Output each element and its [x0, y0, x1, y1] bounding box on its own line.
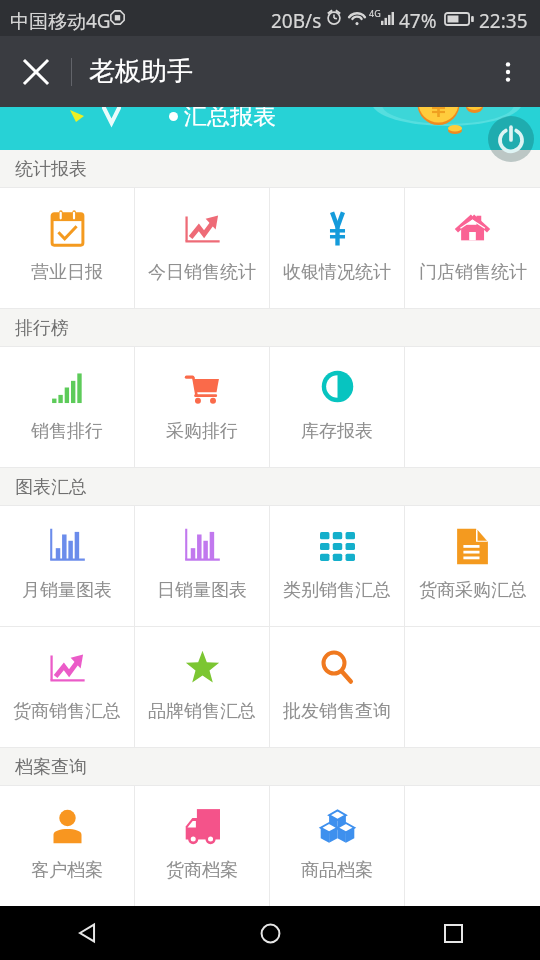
button[interactable]: 采购排行 — [135, 347, 269, 467]
staticText: 47% — [399, 8, 437, 34]
button[interactable]: 库存报表 — [270, 347, 404, 467]
staticText: 货商销售汇总 — [13, 700, 121, 723]
staticText: 中国移动4G — [10, 8, 111, 34]
staticText: 营业日报 — [31, 261, 103, 284]
staticText: 日销量图表 — [157, 579, 247, 602]
staticText: 今日销售统计 — [148, 261, 256, 284]
button[interactable]: 今日销售统计 — [135, 188, 269, 308]
staticText: 统计报表 — [15, 158, 87, 181]
button[interactable]: Home — [243, 906, 297, 960]
button[interactable]: 收银情况统计 — [270, 188, 404, 308]
staticText: 品牌销售汇总 — [148, 700, 256, 723]
staticText: 老板助手 — [89, 55, 193, 88]
staticText: 图表汇总 — [15, 476, 87, 499]
staticText: 22:35 — [479, 8, 528, 34]
button[interactable]: Power — [488, 116, 534, 162]
staticText: 批发销售查询 — [283, 700, 391, 723]
staticText: 销售排行 — [31, 420, 103, 443]
staticText: 4G — [369, 7, 381, 19]
staticText: 客户档案 — [31, 859, 103, 882]
button[interactable]: 货商采购汇总 — [405, 506, 540, 626]
staticText: 20B/s — [271, 8, 322, 34]
staticText: 排行榜 — [15, 317, 69, 340]
staticText: 收银情况统计 — [283, 261, 391, 284]
button[interactable]: 月销量图表 — [0, 506, 134, 626]
staticText: 门店销售统计 — [419, 261, 527, 284]
button[interactable]: 类别销售汇总 — [270, 506, 404, 626]
staticText: 类别销售汇总 — [283, 579, 391, 602]
button[interactable]: Close — [0, 36, 71, 107]
staticText: 档案查询 — [15, 756, 87, 779]
button[interactable]: 客户档案 — [0, 786, 134, 906]
button[interactable]: 货商销售汇总 — [0, 627, 134, 747]
staticText: 货商档案 — [166, 859, 238, 882]
staticText: 货商采购汇总 — [419, 579, 527, 602]
button[interactable]: 日销量图表 — [135, 506, 269, 626]
button[interactable]: 销售排行 — [0, 347, 134, 467]
button[interactable]: 批发销售查询 — [270, 627, 404, 747]
button[interactable]: 品牌销售汇总 — [135, 627, 269, 747]
staticText: 采购排行 — [166, 420, 238, 443]
button[interactable]: Recents — [426, 906, 480, 960]
button[interactable]: 商品档案 — [270, 786, 404, 906]
staticText: 库存报表 — [301, 420, 373, 443]
button[interactable]: Back — [60, 906, 114, 960]
button[interactable]: More options — [476, 36, 540, 107]
button[interactable]: 营业日报 — [0, 188, 134, 308]
button[interactable]: 门店销售统计 — [405, 188, 540, 308]
staticText: 汇总报表 — [184, 107, 276, 131]
staticText: 月销量图表 — [22, 579, 112, 602]
button[interactable]: 货商档案 — [135, 786, 269, 906]
staticText: 商品档案 — [301, 859, 373, 882]
